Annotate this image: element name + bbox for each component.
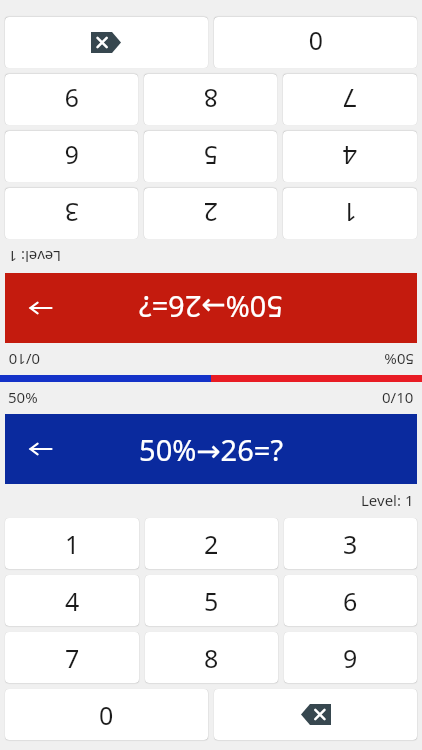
staticText: 3 [343,527,358,561]
button[interactable]: 8 [145,632,278,683]
button[interactable]: 9 [284,632,417,683]
button[interactable]: 6 [284,575,417,626]
staticText: 7 [342,82,357,116]
button[interactable]: 0 [214,17,417,68]
button[interactable]: 3 [5,188,138,239]
button[interactable]: 2 [145,518,278,569]
staticText: 5 [204,584,219,618]
button[interactable]: Backspace [5,17,208,68]
staticText: 0/10 [8,350,40,370]
staticText: 1 [342,196,357,230]
staticText: 1 [65,527,80,561]
button[interactable]: 3 [284,518,417,569]
staticText: 2 [203,196,218,230]
staticText: 0 [308,25,323,59]
staticText: 50% [384,350,414,370]
staticText: 0 [99,698,114,732]
staticText: 5 [203,139,218,173]
staticText: Level: 1 [8,247,61,267]
button[interactable]: 50%→26=? [5,273,417,343]
button[interactable]: 8 [144,74,277,125]
button[interactable]: 2 [144,188,277,239]
staticText: 7 [65,641,80,675]
button[interactable]: 5 [144,131,277,182]
button[interactable]: 1 [283,188,417,239]
staticText: 9 [64,82,79,116]
button[interactable]: Backspace [214,689,417,740]
staticText: 3 [64,196,79,230]
button[interactable]: 9 [5,74,138,125]
button[interactable]: 7 [5,632,139,683]
staticText: 8 [203,82,218,116]
button[interactable]: 50%→26=? [5,414,417,484]
button[interactable]: 0 [5,689,208,740]
staticText: 2 [204,527,219,561]
staticText: 4 [342,139,357,173]
staticText: 50%→26=? [139,288,283,327]
staticText: 50% [8,387,38,407]
staticText: 4 [65,584,80,618]
staticText: 8 [204,641,219,675]
staticText: 9 [343,641,358,675]
button[interactable]: 6 [5,131,138,182]
button[interactable]: 7 [283,74,417,125]
button[interactable]: 4 [5,575,139,626]
button[interactable]: 1 [5,518,139,569]
staticText: 6 [343,584,358,618]
staticText: 6 [64,139,79,173]
button[interactable]: 5 [145,575,278,626]
staticText: 0/10 [382,387,414,407]
staticText: 50%→26=? [139,430,283,469]
staticText: Level: 1 [361,490,414,510]
button[interactable]: 4 [283,131,417,182]
